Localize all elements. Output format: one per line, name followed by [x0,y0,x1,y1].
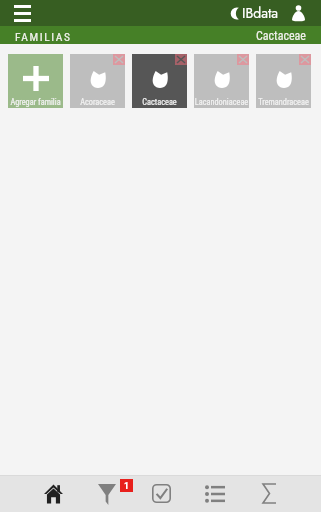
button[interactable]: Tremandraceae [256,54,311,108]
button[interactable]: Remove Tremandraceae [299,54,311,65]
staticText: Agregar familia [8,97,63,107]
button[interactable]: Filter [80,475,134,512]
staticText: FAMILIAS [15,30,72,43]
button[interactable]: Remove Cactaceae [175,54,187,65]
button[interactable]: Lacandoniaceae [194,54,249,108]
button[interactable]: Menu [11,2,33,24]
button[interactable]: Agregar familia [8,54,63,108]
staticText: Tremandraceae [256,97,311,107]
staticText: 1 [124,480,129,491]
button[interactable]: Account [288,2,308,24]
button[interactable]: Cactaceae [132,54,187,108]
staticText: Acoraceae [70,97,125,107]
button[interactable]: Tasks [134,475,188,512]
staticText: IBdata [242,3,279,23]
button[interactable]: Remove Acoraceae [113,54,125,65]
button[interactable]: Acoraceae [70,54,125,108]
staticText: Cactaceae [132,97,187,107]
button[interactable]: Home [26,475,80,512]
button[interactable]: Remove Lacandoniaceae [237,54,249,65]
staticText: Cactaceae [256,29,306,43]
staticText: Lacandoniaceae [194,97,249,107]
button[interactable]: Sum [242,475,296,512]
button[interactable]: List [188,475,242,512]
